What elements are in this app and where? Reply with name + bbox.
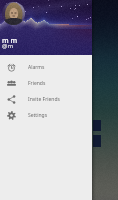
other: Invite Friends — [7, 95, 16, 104]
staticText: m m — [2, 36, 18, 46]
other: Alarms — [7, 63, 16, 72]
staticText: @m — [2, 42, 14, 50]
staticText: Friends — [28, 80, 46, 87]
staticText: Alarms — [28, 64, 45, 71]
staticText: Invite Friends — [28, 96, 60, 103]
other: Settings — [7, 111, 16, 120]
staticText: Settings — [28, 112, 48, 119]
button[interactable]: Friends — [0, 75, 92, 91]
button[interactable]: Invite Friends — [0, 91, 92, 107]
other: Friends — [7, 79, 16, 88]
button[interactable]: Settings — [0, 107, 92, 123]
button[interactable]: Alarms — [0, 59, 92, 75]
